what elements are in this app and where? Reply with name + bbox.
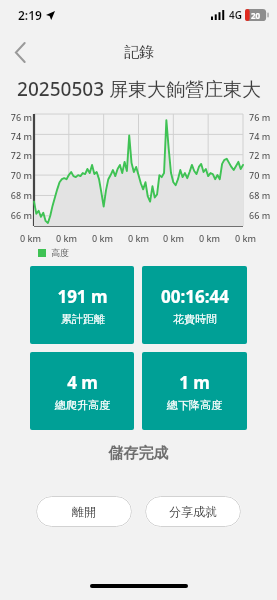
button[interactable]: 分享成就 (145, 496, 241, 527)
staticText: 分享成就 (169, 504, 217, 519)
button[interactable]: Back (0, 32, 40, 72)
staticText: 0 km (163, 232, 185, 244)
staticText: 0 km (199, 232, 221, 244)
staticText: 76 m (249, 111, 277, 123)
staticText: 00:16:44 (161, 285, 229, 308)
staticText: 20 (251, 10, 261, 21)
staticText: 70 m (0, 169, 32, 181)
staticText: 72 m (0, 149, 32, 161)
staticText: 高度 (51, 247, 69, 258)
button[interactable]: 4 m (30, 352, 134, 430)
staticText: 儲存完成 (0, 444, 277, 463)
staticText: 記錄 (124, 43, 154, 62)
staticText: 68 m (0, 189, 32, 201)
staticText: 72 m (249, 149, 277, 161)
staticText: 66 m (249, 209, 277, 221)
button[interactable]: 離開 (36, 496, 132, 527)
staticText: 0 km (92, 232, 114, 244)
staticText: 70 m (249, 169, 277, 181)
staticText: 0 km (56, 232, 78, 244)
staticText: 花費時間 (173, 312, 217, 326)
staticText: 74 m (249, 130, 277, 142)
staticText: 累計距離 (61, 312, 105, 326)
staticText: 0 km (128, 232, 150, 244)
button[interactable]: 1 m (142, 352, 247, 430)
staticText: 4G (229, 8, 242, 22)
button[interactable]: 00:16:44 (142, 266, 247, 344)
staticText: 0 km (235, 232, 257, 244)
staticText: 總爬升高度 (55, 398, 110, 412)
staticText: 2:19 (18, 7, 42, 23)
button[interactable]: 191 m (30, 266, 134, 344)
staticText: 66 m (0, 209, 32, 221)
staticText: 總下降高度 (167, 398, 222, 412)
staticText: 4 m (67, 371, 98, 394)
staticText: 1 m (179, 371, 210, 394)
staticText: 76 m (0, 111, 32, 123)
staticText: 20250503 屏東大餉營庄東大 (17, 76, 261, 102)
staticText: 68 m (249, 189, 277, 201)
staticText: 離開 (72, 504, 96, 519)
staticText: 191 m (57, 285, 108, 308)
staticText: 0 km (20, 232, 42, 244)
staticText: 74 m (0, 130, 32, 142)
